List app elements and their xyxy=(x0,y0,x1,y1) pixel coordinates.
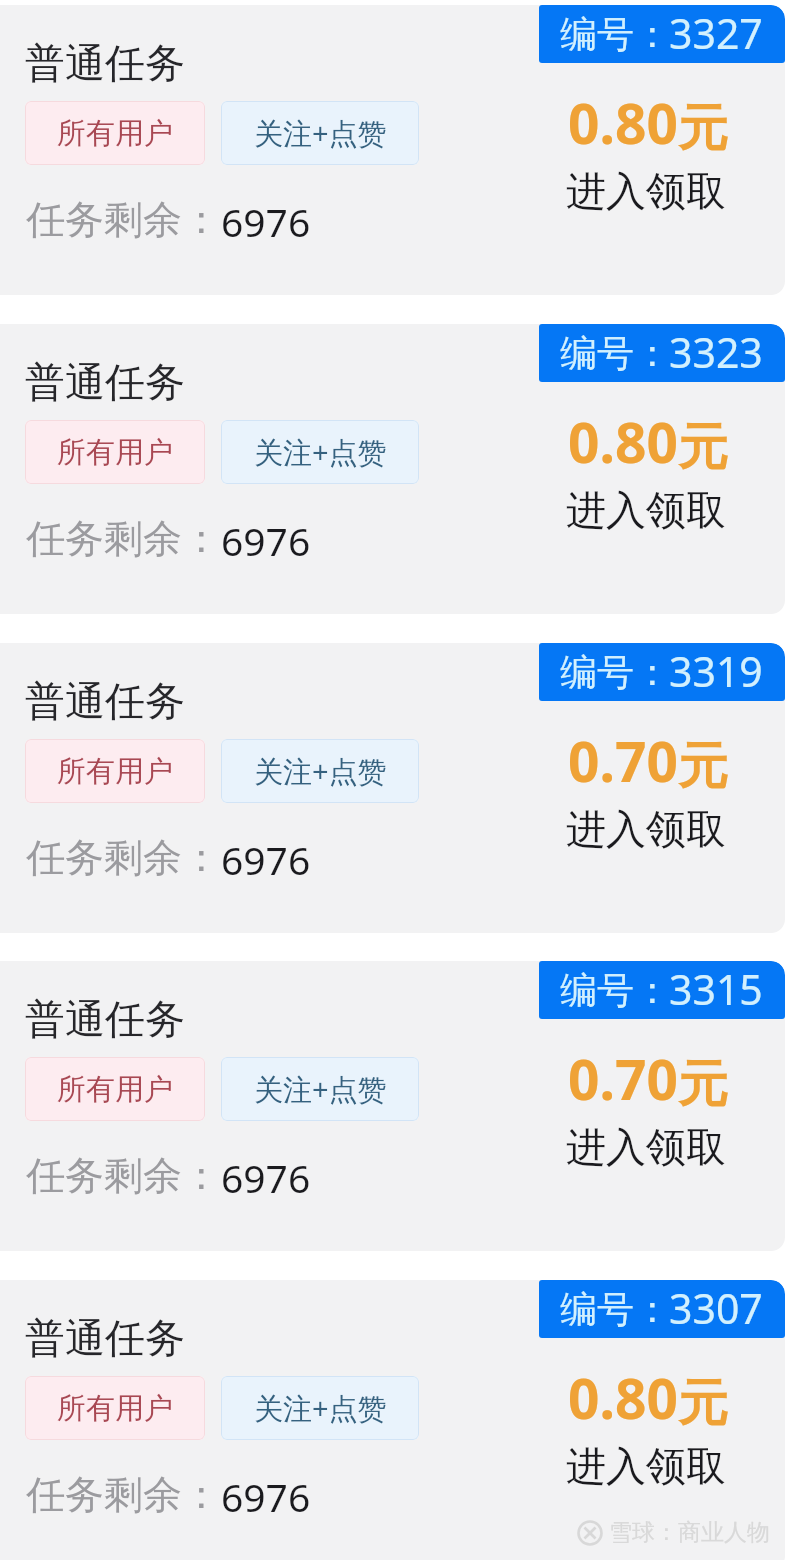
staticText: 6976 xyxy=(221,1151,311,1204)
button[interactable]: 关注+点赞 xyxy=(221,101,419,165)
button[interactable]: 所有用户 xyxy=(25,101,205,165)
staticText: 编号： xyxy=(560,649,671,696)
staticText: 任务剩余： xyxy=(26,833,221,882)
button[interactable]: 所有用户 xyxy=(25,739,205,803)
staticText: 所有用户 xyxy=(57,1390,173,1427)
staticText: 关注+点赞 xyxy=(254,432,387,472)
button[interactable]: 关注+点赞 xyxy=(221,1376,419,1440)
staticText: 编号： xyxy=(560,11,671,58)
button[interactable]: 编号： xyxy=(539,643,785,701)
staticText: 任务剩余： xyxy=(26,1470,221,1519)
staticText: 3307 xyxy=(669,1280,763,1336)
button[interactable]: 编号： xyxy=(0,961,785,1251)
button[interactable]: 编号： xyxy=(0,324,785,614)
staticText: 所有用户 xyxy=(57,1071,173,1108)
staticText: 关注+点赞 xyxy=(254,751,387,791)
staticText: 0.70 xyxy=(568,723,678,798)
staticText: 进入领取 xyxy=(566,804,726,854)
staticText: 0.80 xyxy=(568,85,678,160)
button[interactable]: 编号： xyxy=(539,5,785,63)
staticText: 3327 xyxy=(669,5,763,61)
button[interactable]: 编号： xyxy=(539,961,785,1019)
staticText: 普通任务 xyxy=(25,676,185,726)
staticText: 所有用户 xyxy=(57,753,173,790)
button[interactable]: 所有用户 xyxy=(25,420,205,484)
staticText: 编号： xyxy=(560,330,671,377)
button[interactable]: 0.80 xyxy=(540,69,785,199)
staticText: 6976 xyxy=(221,833,311,886)
staticText: 普通任务 xyxy=(25,357,185,407)
staticText: 6976 xyxy=(221,195,311,248)
staticText: 任务剩余： xyxy=(26,1151,221,1200)
button[interactable]: 编号： xyxy=(0,643,785,933)
staticText: 所有用户 xyxy=(57,434,173,471)
staticText: 编号： xyxy=(560,1286,671,1333)
staticText: 任务剩余： xyxy=(26,195,221,244)
staticText: 3315 xyxy=(669,961,763,1017)
button[interactable]: 0.70 xyxy=(540,707,785,837)
staticText: 进入领取 xyxy=(566,485,726,535)
button[interactable]: 编号： xyxy=(0,5,785,295)
staticText: 普通任务 xyxy=(25,1313,185,1363)
button[interactable]: 关注+点赞 xyxy=(221,420,419,484)
staticText: 3319 xyxy=(669,643,763,699)
staticText: 雪球：商业人物 xyxy=(609,1518,770,1547)
staticText: 元 xyxy=(678,97,728,160)
button[interactable]: 0.70 xyxy=(540,1025,785,1155)
staticText: 0.80 xyxy=(568,1360,678,1435)
button[interactable]: 所有用户 xyxy=(25,1057,205,1121)
staticText: 元 xyxy=(678,416,728,479)
staticText: 关注+点赞 xyxy=(254,1388,387,1428)
staticText: 元 xyxy=(678,1053,728,1116)
other: 雪球 logo xyxy=(577,1520,603,1546)
staticText: 进入领取 xyxy=(566,166,726,216)
button[interactable]: 关注+点赞 xyxy=(221,1057,419,1121)
staticText: 所有用户 xyxy=(57,115,173,152)
staticText: 元 xyxy=(678,735,728,798)
button[interactable]: 编号： xyxy=(0,1280,785,1560)
button[interactable]: 关注+点赞 xyxy=(221,739,419,803)
staticText: 关注+点赞 xyxy=(254,113,387,153)
staticText: 进入领取 xyxy=(566,1441,726,1491)
staticText: 普通任务 xyxy=(25,38,185,88)
staticText: 0.80 xyxy=(568,404,678,479)
staticText: 普通任务 xyxy=(25,994,185,1044)
staticText: 进入领取 xyxy=(566,1122,726,1172)
button[interactable]: 0.80 xyxy=(540,388,785,518)
staticText: 任务剩余： xyxy=(26,514,221,563)
staticText: 6976 xyxy=(221,1470,311,1523)
staticText: 0.70 xyxy=(568,1041,678,1116)
staticText: 元 xyxy=(678,1372,728,1435)
staticText: 3323 xyxy=(669,324,763,380)
button[interactable]: 编号： xyxy=(539,324,785,382)
button[interactable]: 编号： xyxy=(539,1280,785,1338)
button[interactable]: 所有用户 xyxy=(25,1376,205,1440)
staticText: 6976 xyxy=(221,514,311,567)
staticText: 关注+点赞 xyxy=(254,1069,387,1109)
button[interactable]: 0.80 xyxy=(540,1344,785,1474)
staticText: 编号： xyxy=(560,967,671,1014)
